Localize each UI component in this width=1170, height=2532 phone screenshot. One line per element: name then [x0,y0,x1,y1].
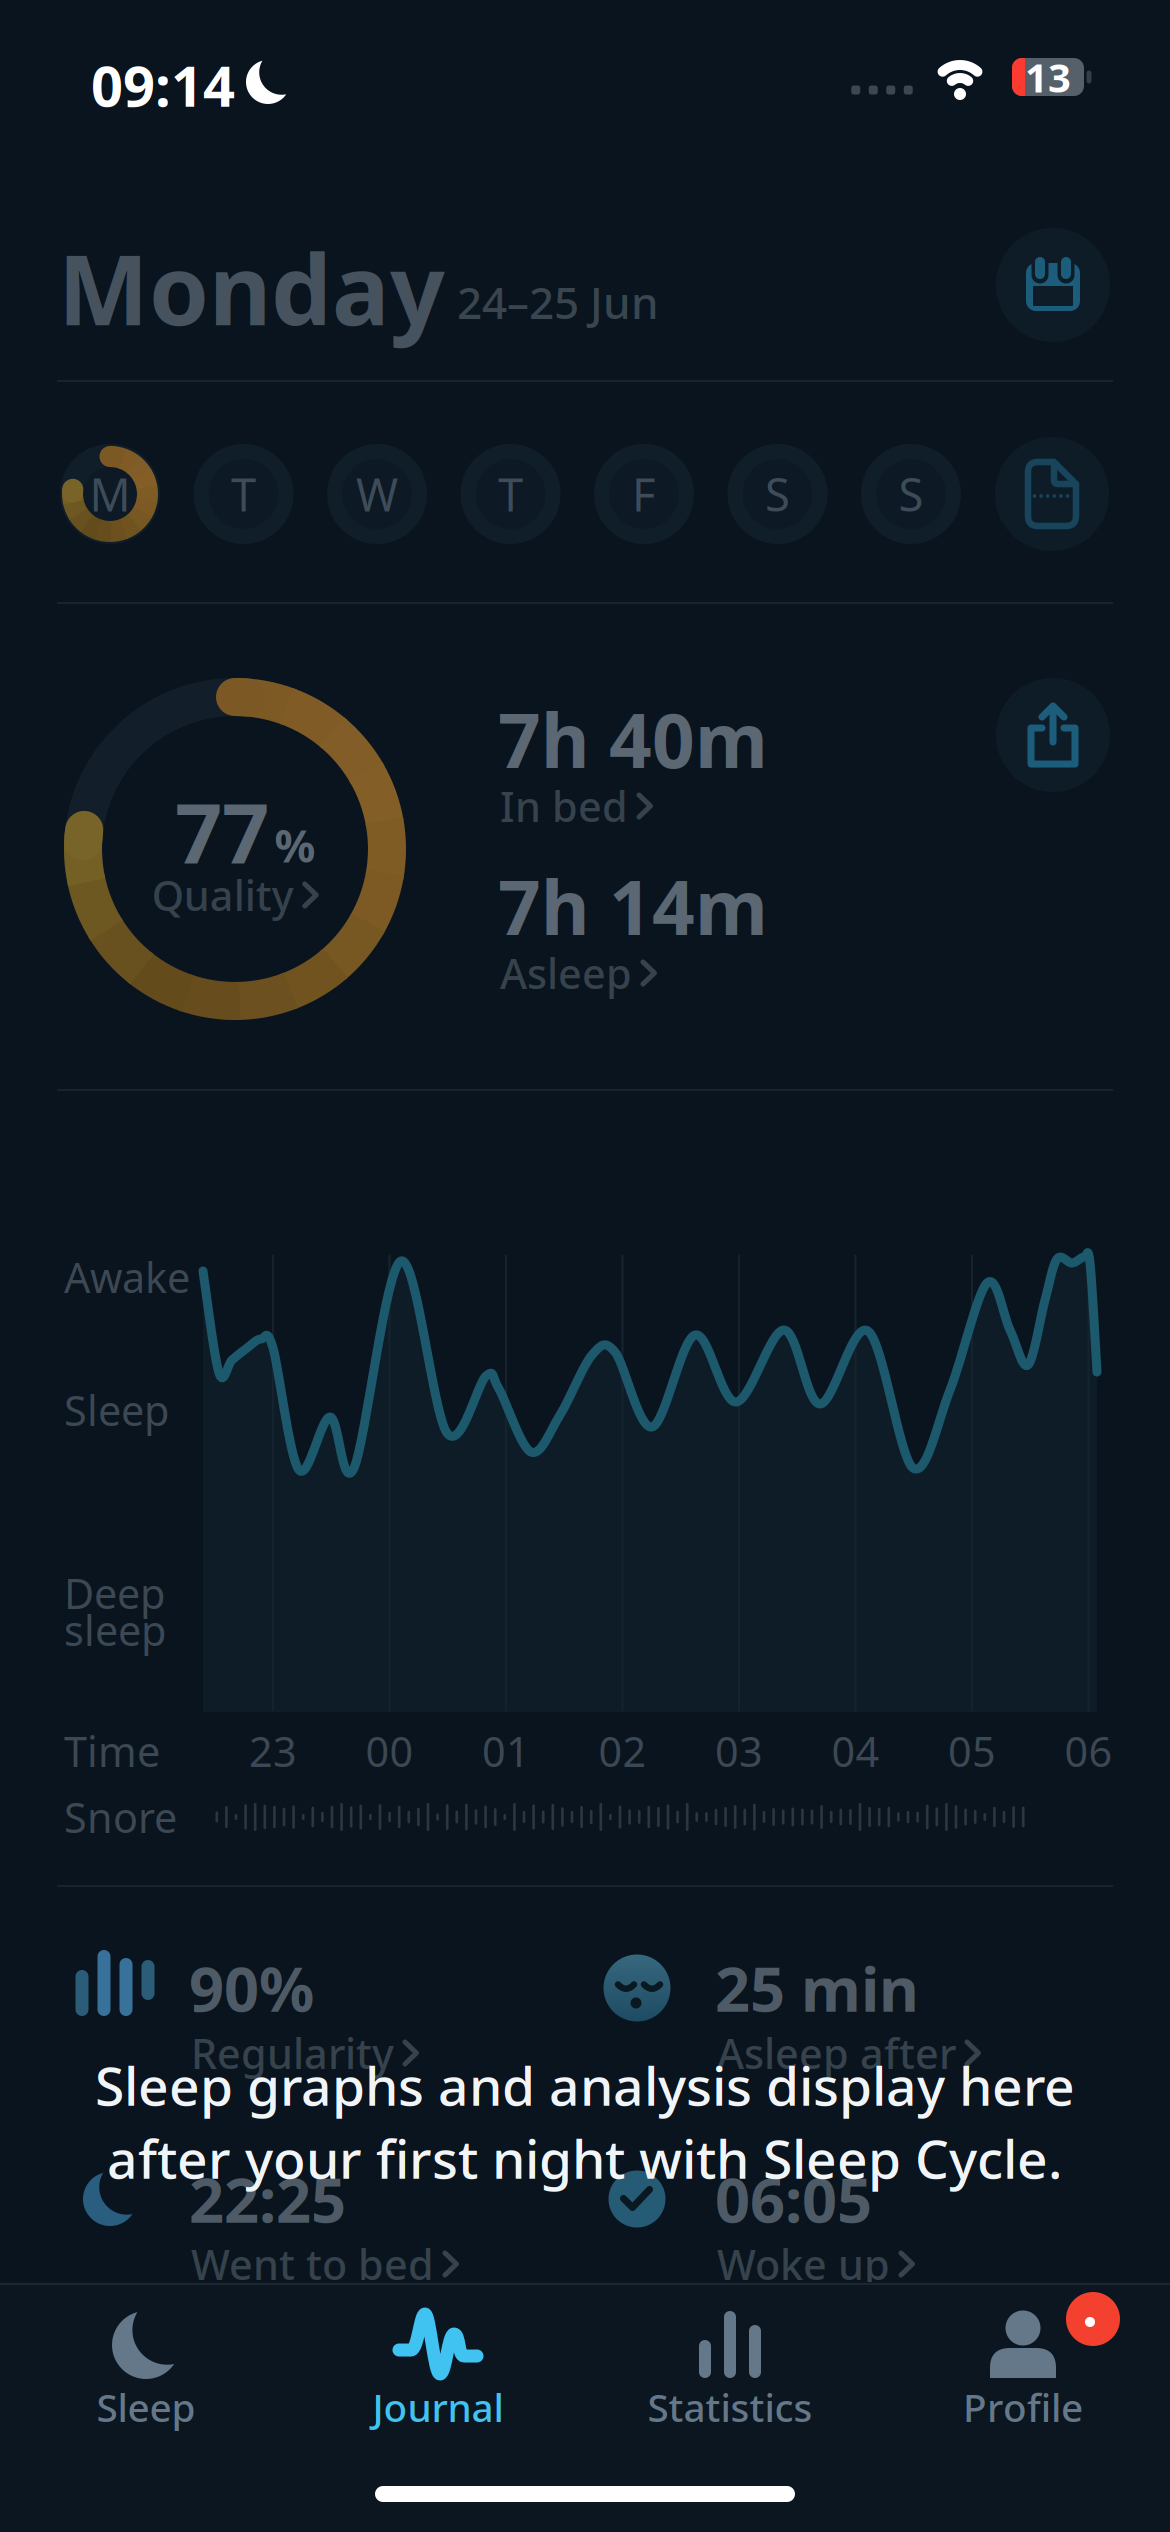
button[interactable]: Asleep 7 hours 14 minutes [498,872,918,1006]
staticText: 24–25 Jun [457,273,659,331]
button[interactable]: Thursday [456,440,564,548]
button[interactable]: Asleep after 25 min [600,1928,1120,2088]
button[interactable]: Sleep [11,2296,281,2456]
staticText: T [231,464,256,524]
staticText: Asleep after [717,2026,956,2080]
button[interactable]: In bed 7 hours 40 minutes [498,705,918,839]
button[interactable]: Friday [590,440,698,548]
staticText: 22:25 [189,2158,346,2240]
staticText: 90% [189,1947,314,2029]
button[interactable]: Monday [56,440,164,548]
button[interactable]: Regularity 90% [64,1928,584,2088]
button[interactable]: Saturday [723,440,831,548]
staticText: Sleep graphs and analysis display here [95,2050,1075,2120]
button[interactable]: Woke up 06:05 [600,2139,1120,2299]
staticText: Woke up [717,2237,890,2291]
staticText: 04 [831,1724,879,1778]
staticText: Time [64,1724,160,1778]
staticText: Quality [152,868,294,922]
staticText: Sleep [96,2381,195,2433]
staticText: Deep [64,1566,165,1620]
staticText: Went to bed [191,2237,434,2291]
button[interactable]: Wednesday [323,440,431,548]
staticText: In bed [500,779,628,833]
staticText: S [765,464,790,524]
staticText: Monday [58,224,445,352]
staticText: Profile [963,2381,1083,2433]
staticText: after your first night with Sleep Cycle. [107,2123,1063,2193]
staticText: Asleep [500,946,632,1000]
staticText: 05 [948,1724,996,1778]
staticText: 06:05 [715,2158,872,2240]
staticText: 23 [249,1724,297,1778]
button[interactable]: Sunday [857,440,965,548]
staticText: 03 [715,1724,763,1778]
staticText: Journal [372,2381,503,2433]
staticText: 01 [482,1724,530,1778]
staticText: F [632,464,656,524]
staticText: % [274,815,315,875]
staticText: Snore [64,1790,177,1844]
button[interactable]: Tuesday [189,440,297,548]
staticText: sleep [64,1603,166,1657]
staticText: Statistics [647,2381,812,2433]
staticText: T [498,464,523,524]
staticText: 77 [175,777,269,887]
staticText: 00 [365,1724,413,1778]
button[interactable]: Journal [303,2296,573,2456]
staticText: W [356,464,398,524]
button[interactable]: Share [996,678,1110,792]
staticText: 7h 14m [498,856,768,956]
staticText: Awake [64,1250,190,1304]
button[interactable]: Statistics [595,2296,865,2456]
button[interactable]: Went to bed 22:25 [64,2139,584,2299]
staticText: Regularity [191,2026,394,2080]
button[interactable]: Sleep notes [995,437,1109,551]
staticText: Sleep [64,1383,169,1437]
button[interactable]: Calendar [996,228,1110,342]
staticText: 09:14 [91,48,235,122]
staticText: 7h 40m [498,689,768,789]
button[interactable]: Sleep quality 77 percent [59,673,411,1025]
staticText: 25 min [715,1947,919,2029]
staticText: S [898,464,923,524]
staticText: M [89,464,130,524]
staticText: 13 [1025,50,1071,103]
staticText: 02 [598,1724,646,1778]
staticText: 06 [1064,1724,1112,1778]
button[interactable]: Profile [888,2296,1158,2456]
